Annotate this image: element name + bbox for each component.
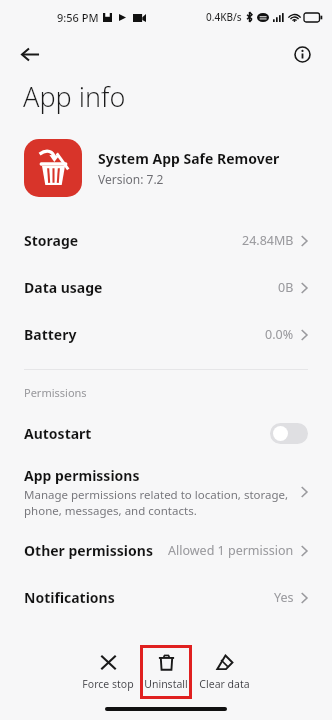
staticText: Autostart [24, 424, 92, 443]
staticText: 0.4KB/s [206, 10, 242, 24]
staticText: Data usage [24, 278, 103, 297]
button[interactable]: Back [12, 36, 48, 72]
button[interactable]: Battery [0, 311, 332, 358]
button[interactable]: Autostart [0, 410, 332, 457]
staticText: Other permissions [24, 541, 153, 560]
button[interactable]: Notifications [0, 574, 332, 621]
button[interactable]: App permissions [0, 457, 332, 527]
button[interactable]: Force stop [82, 645, 134, 699]
staticText: Clear data [199, 677, 250, 691]
staticText: Version: 7.2 [98, 171, 164, 187]
staticText: Manage permissions related to location, … [24, 487, 289, 518]
button[interactable]: Other permissions [0, 527, 332, 574]
button[interactable]: Storage [0, 217, 332, 264]
staticText: Allowed 1 permission [168, 542, 294, 559]
button[interactable]: Clear data [198, 645, 250, 699]
staticText: Notifications [24, 588, 115, 607]
staticText: Permissions [24, 385, 87, 400]
staticText: Yes [274, 589, 294, 606]
staticText: Uninstall [144, 677, 188, 691]
button[interactable]: About this app [284, 36, 320, 72]
staticText: 24.84MB [242, 232, 294, 249]
staticText: 0.0% [265, 326, 294, 343]
staticText: App permissions [24, 466, 140, 485]
staticText: 0B [278, 279, 294, 296]
staticText: Force stop [82, 677, 134, 691]
staticText: Storage [24, 231, 79, 250]
button[interactable]: Data usage [0, 264, 332, 311]
staticText: App info [23, 78, 126, 115]
staticText: Battery [24, 325, 77, 344]
staticText: 9:56 PM [57, 10, 99, 25]
button[interactable]: Uninstall [140, 645, 192, 699]
staticText: System App Safe Remover [98, 149, 280, 168]
